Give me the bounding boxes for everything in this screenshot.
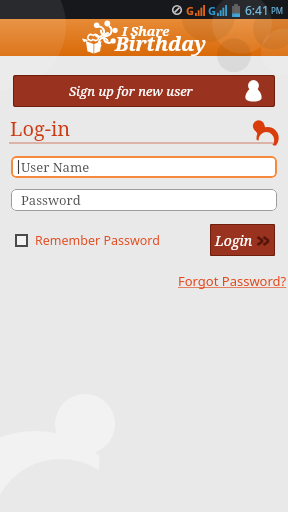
staticText: 6:41	[245, 2, 269, 18]
other: New user	[245, 80, 262, 102]
staticText: User Name	[21, 158, 90, 176]
staticText: I Share	[122, 22, 170, 40]
button[interactable]: Sign up for new user	[14, 76, 274, 106]
staticText: Login	[215, 231, 253, 250]
staticText: Log-in	[10, 115, 71, 142]
staticText: Remember Password	[35, 232, 160, 249]
staticText: G	[208, 3, 216, 18]
staticText: Password	[21, 191, 81, 209]
staticText: Birthday	[115, 30, 206, 57]
button[interactable]: User Name	[11, 156, 277, 178]
button[interactable]: Password	[11, 189, 277, 211]
button[interactable]: Login	[211, 225, 274, 255]
staticText: Sign up for new user	[69, 82, 193, 100]
button[interactable]: Forgot Password?	[178, 272, 287, 290]
staticText: Forgot Password?	[178, 272, 287, 290]
staticText: G	[186, 3, 194, 18]
staticText: PM	[271, 5, 284, 16]
button[interactable]: Remember Password	[15, 231, 160, 249]
